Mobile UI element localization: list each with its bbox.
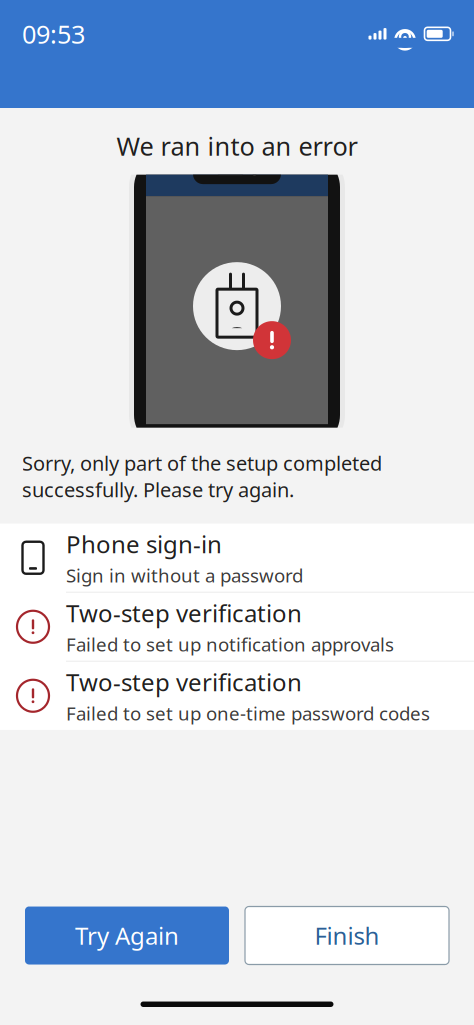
- button[interactable]: Two-step verification: [0, 662, 474, 730]
- staticText: Try Again: [75, 920, 179, 951]
- button[interactable]: Phone sign-in: [0, 524, 474, 593]
- staticText: Sorry, only part of the setup completed …: [22, 450, 382, 503]
- staticText: Failed to set up notification approvals: [66, 632, 394, 657]
- staticText: Two-step verification: [66, 666, 302, 698]
- staticText: Failed to set up one-time password codes: [66, 701, 430, 726]
- staticText: Two-step verification: [66, 597, 302, 629]
- staticText: Phone sign-in: [66, 528, 222, 560]
- staticText: We ran into an error: [116, 129, 357, 163]
- staticText: Finish: [314, 920, 379, 951]
- button[interactable]: Two-step verification: [0, 593, 474, 662]
- button[interactable]: Finish: [245, 906, 449, 964]
- staticText: 09:53: [22, 17, 85, 51]
- staticText: Sign in without a password: [66, 563, 303, 588]
- button[interactable]: Try Again: [25, 906, 229, 964]
